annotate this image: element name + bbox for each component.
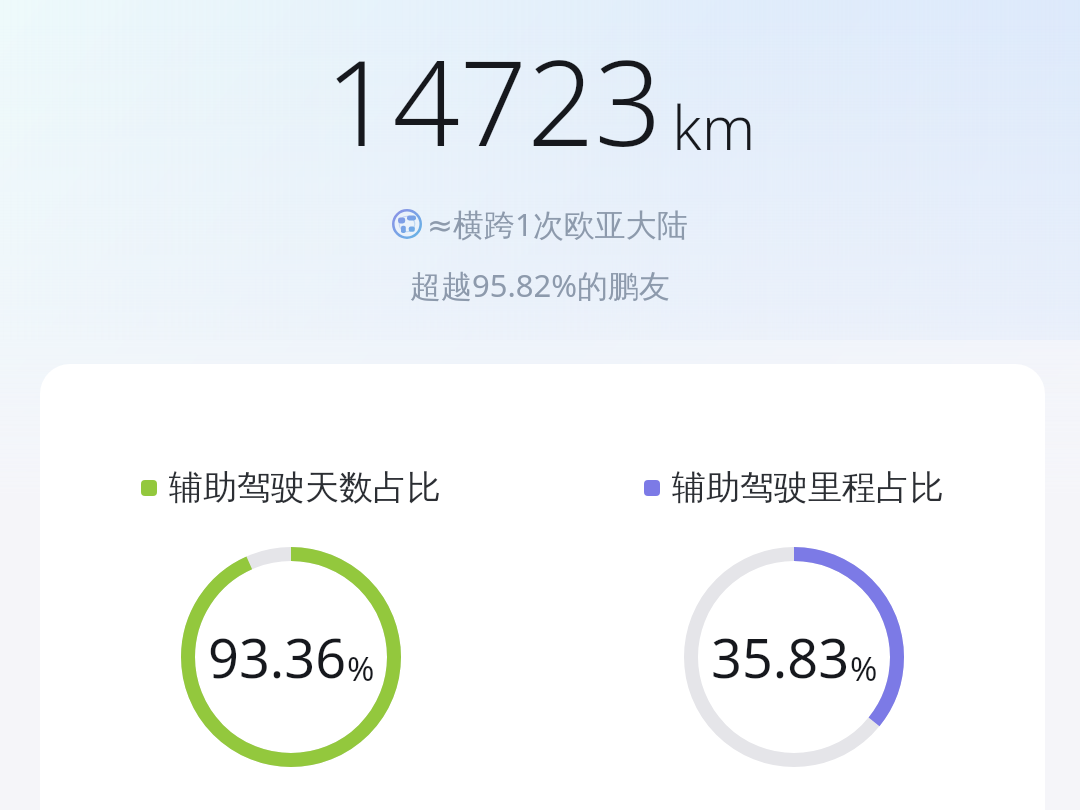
staticText: % [347, 646, 375, 691]
staticText: 35.83 [711, 620, 850, 694]
staticText: % [850, 646, 878, 691]
button[interactable]: 辅助驾驶天数占比 [40, 364, 1045, 810]
button[interactable]: 辅助驾驶天数占比 [40, 466, 542, 509]
staticText: 93.36 [208, 620, 347, 694]
other: Globe [392, 209, 422, 239]
staticText: 14723 [325, 20, 662, 181]
staticText: 超越95.82%的鹏友 [0, 264, 1080, 306]
button[interactable]: 辅助驾驶里程占比 [542, 466, 1045, 509]
staticText: 辅助驾驶天数占比 [169, 466, 441, 509]
staticText: ≈横跨1次欧亚大陆 [427, 203, 688, 245]
staticText: km [672, 86, 756, 168]
staticText: 辅助驾驶里程占比 [672, 466, 944, 509]
